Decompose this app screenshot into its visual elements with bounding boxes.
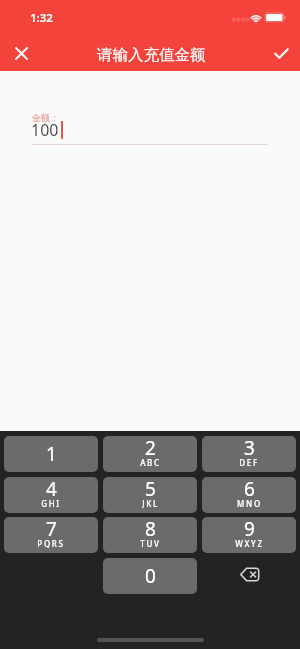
staticText: 1:32 bbox=[30, 10, 53, 26]
button[interactable]: Backspace bbox=[202, 558, 296, 594]
staticText: WXYZ bbox=[235, 538, 264, 548]
button[interactable]: 3 bbox=[202, 436, 296, 472]
staticText: 3 bbox=[244, 436, 255, 461]
button[interactable]: 9 bbox=[202, 517, 296, 553]
button[interactable]: 1 bbox=[4, 436, 98, 472]
button[interactable]: 6 bbox=[202, 477, 296, 513]
staticText: 100 bbox=[31, 119, 59, 141]
staticText: JKL bbox=[142, 498, 159, 508]
button[interactable]: Confirm bbox=[262, 34, 300, 72]
staticText: 金额： bbox=[32, 112, 59, 123]
button[interactable]: 2 bbox=[103, 436, 197, 472]
staticText: 8 bbox=[145, 517, 156, 542]
staticText: 9 bbox=[244, 517, 255, 542]
staticText: 6 bbox=[244, 477, 255, 502]
staticText: ABC bbox=[140, 457, 161, 467]
button[interactable]: 4 bbox=[4, 477, 98, 513]
button[interactable]: Close bbox=[1, 33, 40, 71]
staticText: 1 bbox=[46, 441, 57, 467]
button[interactable]: 7 bbox=[4, 517, 98, 553]
button[interactable]: 0 bbox=[103, 558, 197, 594]
staticText: DEF bbox=[239, 457, 259, 467]
staticText: 2 bbox=[145, 436, 156, 461]
staticText: GHI bbox=[41, 498, 61, 508]
staticText: 请输入充值金额 bbox=[97, 45, 206, 65]
staticText: 0 bbox=[145, 563, 156, 589]
staticText: MNO bbox=[237, 498, 262, 508]
staticText: TUV bbox=[140, 538, 161, 548]
staticText: 7 bbox=[46, 517, 57, 542]
staticText: PQRS bbox=[37, 538, 65, 548]
staticText: 5 bbox=[145, 477, 156, 502]
button[interactable]: 8 bbox=[103, 517, 197, 553]
staticText: 4 bbox=[46, 477, 57, 502]
button[interactable]: 5 bbox=[103, 477, 197, 513]
